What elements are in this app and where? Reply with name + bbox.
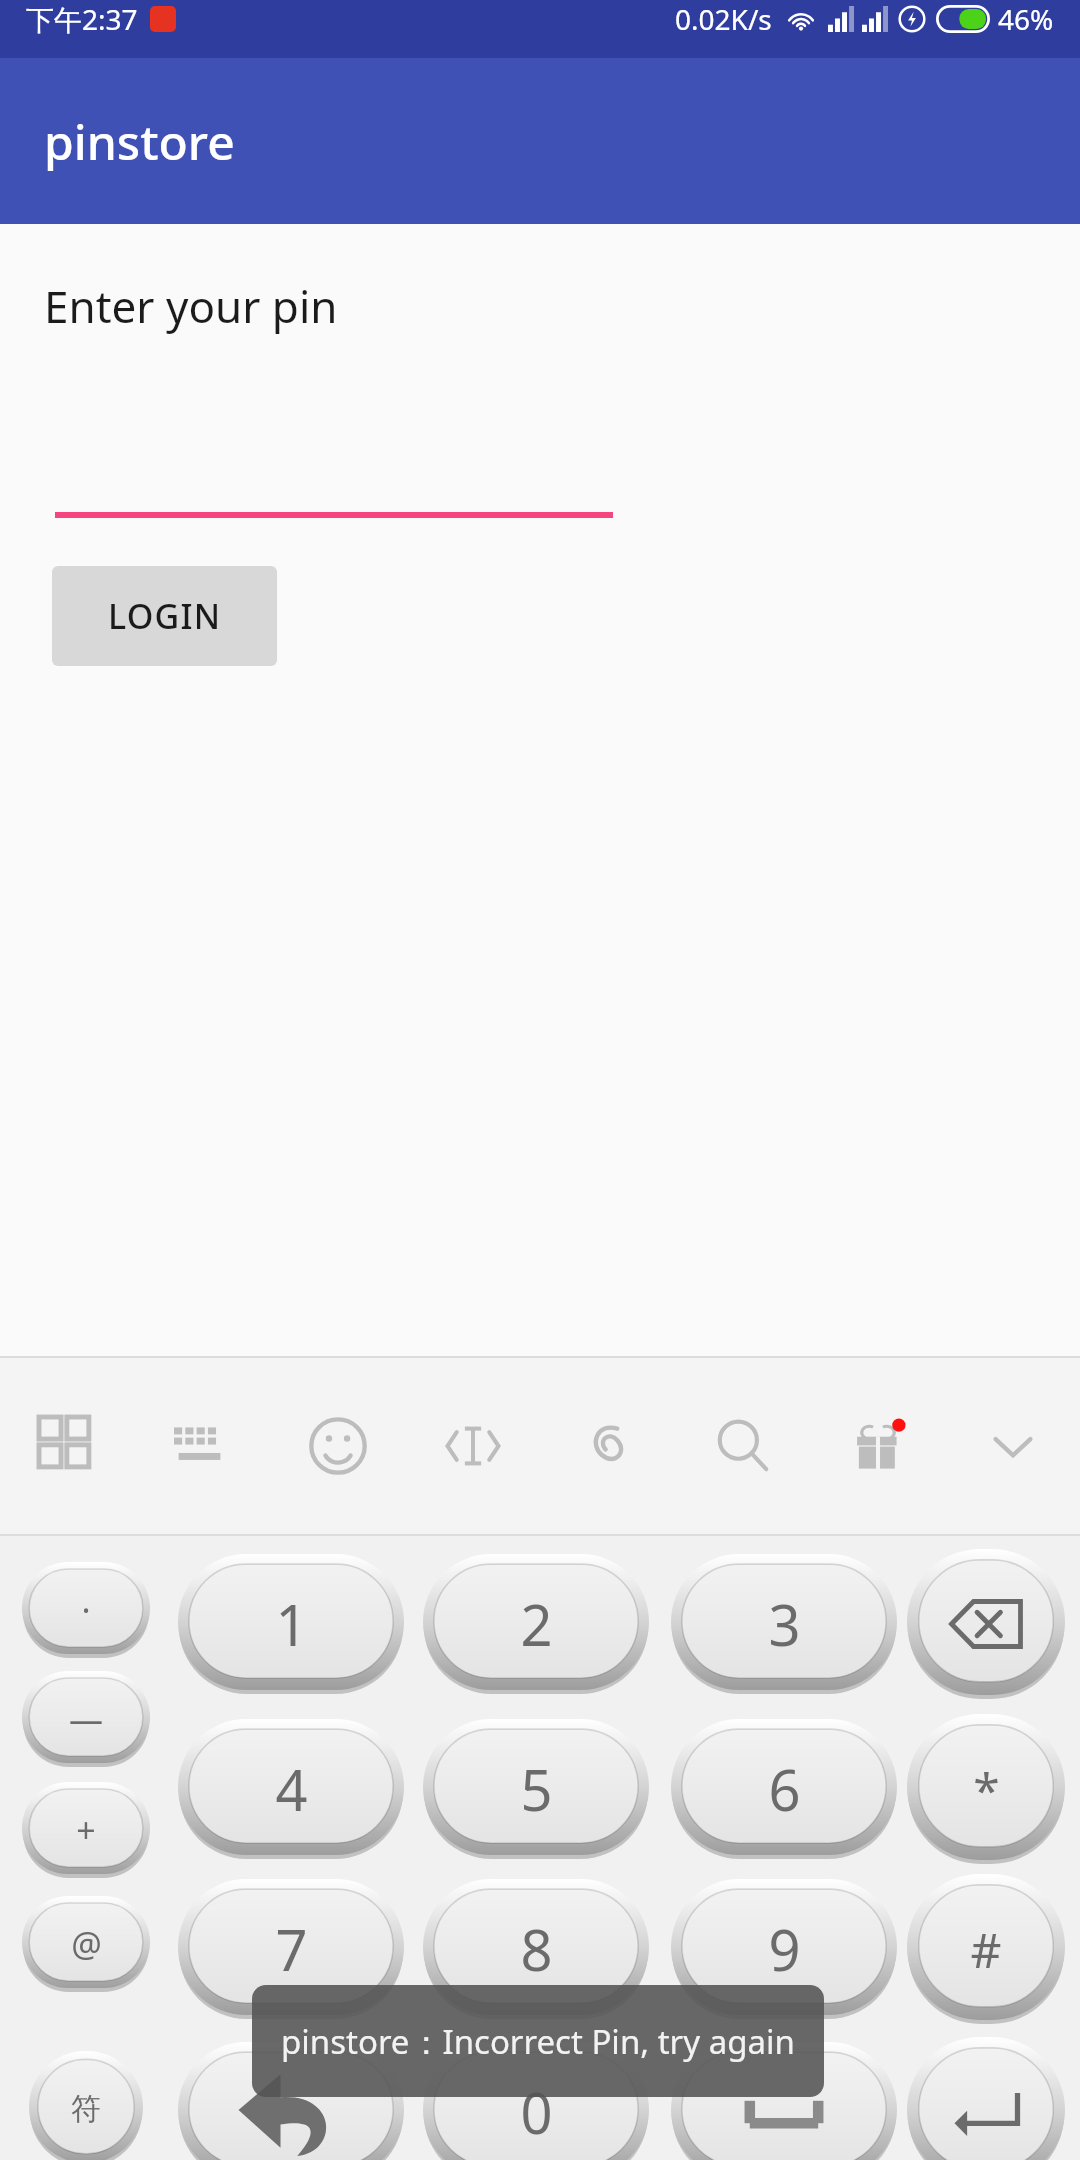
button[interactable]: 6: [670, 1719, 898, 1859]
staticText: 5: [520, 1751, 553, 1827]
staticText: 下午2:37: [26, 0, 138, 38]
staticText: 4: [275, 1751, 308, 1827]
button[interactable]: 2: [422, 1554, 650, 1694]
staticText: 0: [520, 2074, 553, 2150]
staticText: 7: [275, 1911, 308, 1987]
staticText: pinstore: [44, 109, 235, 174]
staticText: 46%: [998, 0, 1054, 38]
button[interactable]: 5: [422, 1719, 650, 1859]
button[interactable]: 8: [422, 1879, 650, 2019]
button[interactable]: 1: [177, 1554, 405, 1694]
button[interactable]: Apps: [0, 1358, 135, 1534]
button[interactable]: Keyboard: [135, 1358, 270, 1534]
staticText: Enter your pin: [44, 276, 338, 336]
button[interactable]: 符: [28, 2051, 144, 2160]
staticText: 0.02K/s: [675, 0, 772, 38]
button[interactable]: +: [21, 1782, 151, 1878]
button[interactable]: #: [906, 1874, 1066, 2024]
staticText: #: [970, 1917, 1002, 1982]
staticText: 9: [768, 1911, 801, 1987]
button[interactable]: LOGIN: [52, 566, 277, 666]
button[interactable]: Text selection: [405, 1358, 540, 1534]
button[interactable]: Emoji: [270, 1358, 405, 1534]
button[interactable]: 9: [670, 1879, 898, 2019]
staticText: *: [973, 1757, 1000, 1822]
button[interactable]: Hide keyboard: [945, 1358, 1080, 1534]
button[interactable]: *: [906, 1714, 1066, 1864]
staticText: pinstore：Incorrect Pin, try again: [281, 2019, 795, 2064]
staticText: 1: [275, 1586, 308, 1662]
button[interactable]: —: [21, 1671, 151, 1767]
staticText: 6: [768, 1751, 801, 1827]
staticText: —: [69, 1696, 103, 1742]
button[interactable]: Search: [675, 1358, 810, 1534]
button[interactable]: Back: [177, 2042, 405, 2160]
button[interactable]: Enter: [906, 2037, 1066, 2160]
staticText: 3: [768, 1586, 801, 1662]
button[interactable]: Backspace: [906, 1549, 1066, 1699]
staticText: @: [71, 1921, 102, 1967]
button[interactable]: Gifts: [810, 1358, 945, 1534]
button[interactable]: 3: [670, 1554, 898, 1694]
staticText: LOGIN: [108, 593, 222, 639]
staticText: 2: [520, 1586, 553, 1662]
button[interactable]: @: [21, 1896, 151, 1992]
button[interactable]: Clipboard: [540, 1358, 675, 1534]
button[interactable]: ·: [21, 1562, 151, 1658]
staticText: +: [76, 1807, 96, 1853]
staticText: 8: [520, 1911, 553, 1987]
button[interactable]: 4: [177, 1719, 405, 1859]
button[interactable]: Space: [670, 2042, 898, 2160]
button[interactable]: [55, 428, 613, 518]
button[interactable]: 0: [422, 2042, 650, 2160]
staticText: 符: [71, 2090, 101, 2128]
staticText: ·: [81, 1587, 91, 1633]
button[interactable]: 7: [177, 1879, 405, 2019]
